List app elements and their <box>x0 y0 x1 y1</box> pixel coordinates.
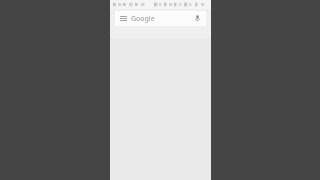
button[interactable]: Menu <box>115 11 206 26</box>
staticText: Google <box>131 14 193 24</box>
button[interactable]: Voice search <box>193 14 202 23</box>
button[interactable]: Menu <box>119 14 128 23</box>
